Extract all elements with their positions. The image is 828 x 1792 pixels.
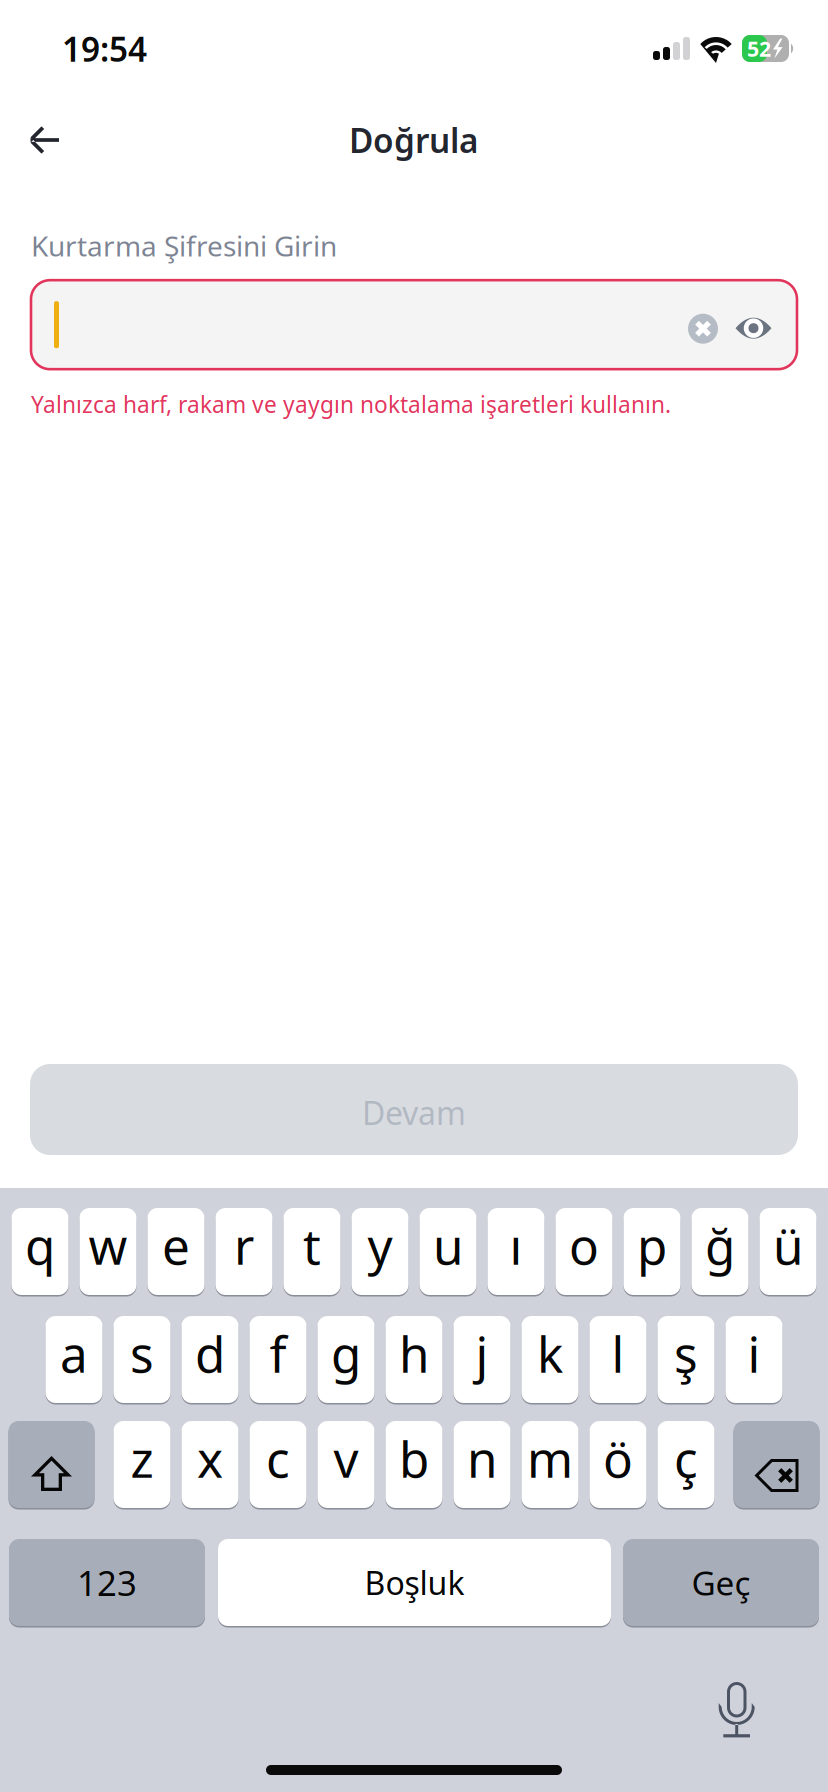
button[interactable]: m [521,1421,578,1508]
staticText: n [467,1426,497,1491]
staticText: l [611,1321,624,1386]
staticText: u [433,1213,463,1278]
staticText: f [269,1321,286,1386]
button[interactable]: Boşluk [218,1539,611,1626]
button[interactable]: z [113,1421,170,1508]
staticText: a [60,1321,88,1386]
button[interactable]: s [113,1316,170,1403]
button[interactable]: t [283,1208,340,1295]
button[interactable]: ö [589,1421,646,1508]
staticText: ı [509,1213,522,1278]
staticText: ç [674,1426,698,1491]
button[interactable]: o [555,1208,612,1295]
staticText: Kurtarma Şifresini Girin [31,227,337,264]
staticText: o [569,1213,599,1278]
button[interactable]: Geç [623,1539,819,1626]
button[interactable]: ı [487,1208,544,1295]
staticText: ğ [705,1213,735,1278]
button[interactable]: Backspace [733,1421,819,1508]
button[interactable]: Show password [735,315,772,342]
button[interactable]: y [351,1208,408,1295]
button[interactable]: ş [657,1316,714,1403]
button[interactable]: q [11,1208,68,1295]
staticText: q [25,1213,55,1278]
button[interactable]: v [317,1421,374,1508]
staticText: Boşluk [364,1561,464,1604]
staticText: w [88,1213,127,1278]
staticText: d [195,1321,225,1386]
staticText: 123 [77,1559,137,1605]
staticText: g [331,1321,361,1386]
staticText: ü [773,1213,803,1278]
staticText: m [527,1426,573,1491]
button[interactable]: d [181,1316,238,1403]
button[interactable]: f [249,1316,306,1403]
staticText: j [475,1321,488,1386]
button[interactable]: g [317,1316,374,1403]
button[interactable]: e [147,1208,204,1295]
button[interactable]: u [419,1208,476,1295]
staticText: ş [674,1321,698,1386]
staticText: k [537,1321,563,1386]
staticText: s [130,1321,154,1386]
button[interactable]: ç [657,1421,714,1508]
staticText: e [162,1213,190,1278]
staticText: 19:54 [62,27,147,71]
button[interactable]: n [453,1421,510,1508]
button[interactable]: l [589,1316,646,1403]
button[interactable]: i [725,1316,782,1403]
staticText: 52 [747,34,771,63]
staticText: x [197,1426,223,1491]
button[interactable]: Dictation [718,1682,757,1739]
staticText: t [303,1213,321,1278]
staticText: b [399,1426,429,1491]
button[interactable]: ü [759,1208,816,1295]
button[interactable]: h [385,1316,442,1403]
button[interactable]: Shift [8,1421,94,1508]
button[interactable]: r [215,1208,272,1295]
button[interactable]: 123 [9,1539,205,1626]
staticText: v [333,1426,358,1491]
staticText: h [399,1321,429,1386]
staticText: p [637,1213,667,1278]
button[interactable]: b [385,1421,442,1508]
staticText: ö [603,1426,633,1491]
button[interactable]: a [45,1316,102,1403]
staticText: r [234,1213,254,1278]
staticText: Devam [362,1091,466,1134]
button[interactable]: x [181,1421,238,1508]
staticText: Yalnızca harf, rakam ve yaygın noktalama… [31,389,671,419]
staticText: i [747,1321,760,1386]
button[interactable]: k [521,1316,578,1403]
button[interactable]: w [79,1208,136,1295]
staticText: Geç [691,1560,750,1605]
button[interactable]: Clear text [688,314,718,344]
button[interactable]: Devam [30,1064,798,1155]
button[interactable]: ğ [691,1208,748,1295]
button[interactable]: c [249,1421,306,1508]
button[interactable]: p [623,1208,680,1295]
staticText: y [367,1213,392,1278]
button[interactable]: Back [0,109,82,171]
staticText: Doğrula [349,118,479,162]
button[interactable]: j [453,1316,510,1403]
staticText: z [130,1426,153,1491]
staticText: c [266,1426,290,1491]
